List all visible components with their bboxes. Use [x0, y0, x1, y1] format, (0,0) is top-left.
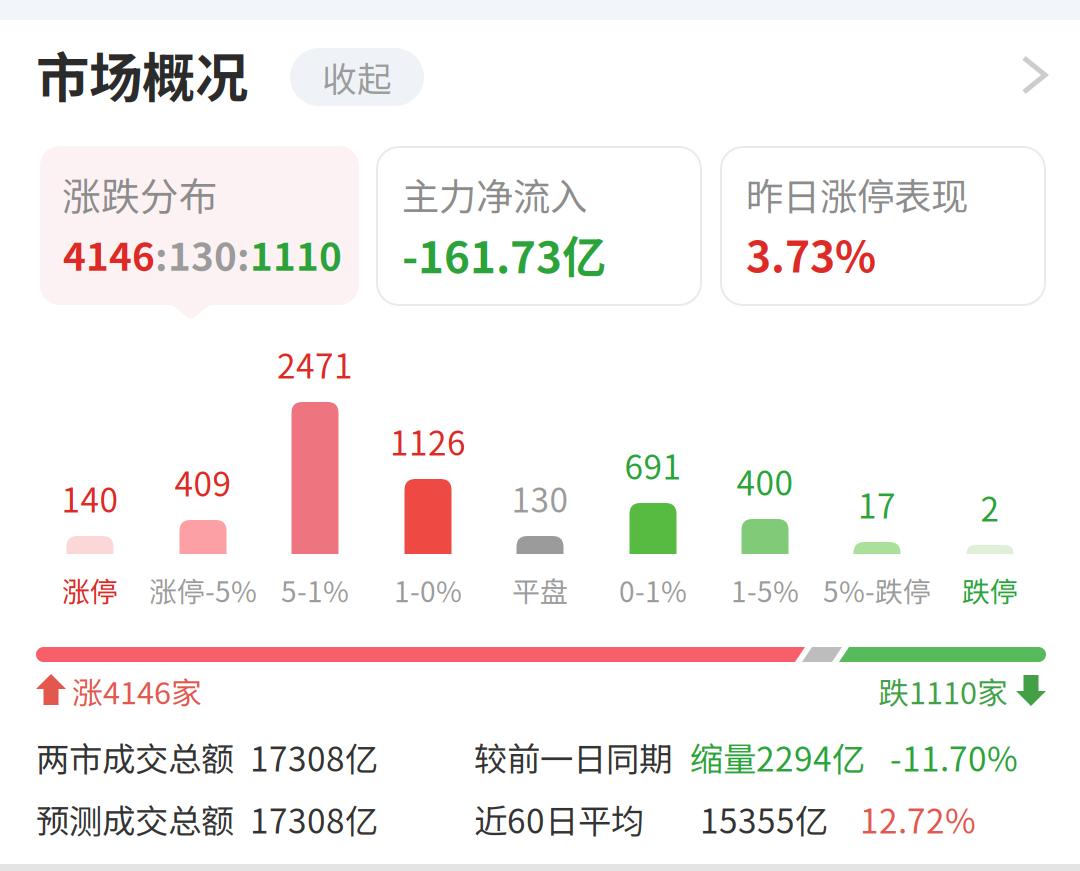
staticText: 涨跌分布 — [62, 166, 218, 222]
staticText: 缩量2294亿 — [690, 733, 865, 781]
staticText: 较前一日同期 — [474, 733, 672, 781]
staticText: 3.73% — [746, 223, 876, 285]
staticText: 涨停-5% — [149, 570, 257, 610]
staticText: 17308亿 — [250, 795, 378, 843]
staticText: 1126 — [390, 417, 466, 465]
button[interactable]: 昨日涨停表现 — [0, 0, 1080, 871]
staticText: 15355亿 — [700, 795, 828, 843]
staticText: 涨4146家 — [72, 669, 202, 713]
staticText: 2471 — [277, 340, 353, 388]
staticText: 涨停 — [62, 570, 118, 610]
staticText: 130 — [511, 474, 568, 522]
staticText: 市场概况 — [36, 35, 248, 113]
staticText: 5-1% — [281, 570, 349, 610]
button[interactable]: 查看更多 — [0, 0, 1080, 871]
staticText: 2 — [980, 483, 999, 531]
staticText: 140 — [61, 474, 118, 522]
staticText: -11.70% — [890, 733, 1018, 781]
staticText: 近60日平均 — [474, 795, 644, 843]
button[interactable]: 收起 — [0, 0, 1080, 871]
staticText: 收起 — [322, 52, 392, 102]
staticText: 主力净流入 — [402, 167, 587, 221]
staticText: :130: — [155, 226, 250, 282]
staticText: 4146 — [63, 226, 155, 282]
staticText: 17308亿 — [250, 733, 378, 781]
staticText: -161.73亿 — [402, 222, 606, 286]
button[interactable]: 主力净流入 — [0, 0, 1080, 871]
staticText: 691 — [624, 441, 681, 489]
staticText: 跌停 — [962, 570, 1018, 610]
staticText: 0-1% — [619, 570, 687, 610]
staticText: 400 — [736, 457, 793, 505]
staticText: 1-0% — [394, 570, 462, 610]
staticText: 12.72% — [860, 795, 976, 843]
staticText: 1110 — [250, 226, 342, 282]
staticText: 平盘 — [512, 570, 568, 610]
staticText: 跌1110家 — [878, 669, 1008, 713]
staticText: 预测成交总额 — [36, 795, 234, 843]
staticText: 17 — [858, 480, 896, 528]
button[interactable]: 涨跌分布 — [0, 0, 1080, 871]
staticText: 两市成交总额 — [36, 733, 234, 781]
staticText: 昨日涨停表现 — [746, 167, 968, 221]
staticText: 409 — [174, 458, 231, 506]
staticText: 5%-跌停 — [823, 570, 931, 610]
staticText: 1-5% — [731, 570, 799, 610]
